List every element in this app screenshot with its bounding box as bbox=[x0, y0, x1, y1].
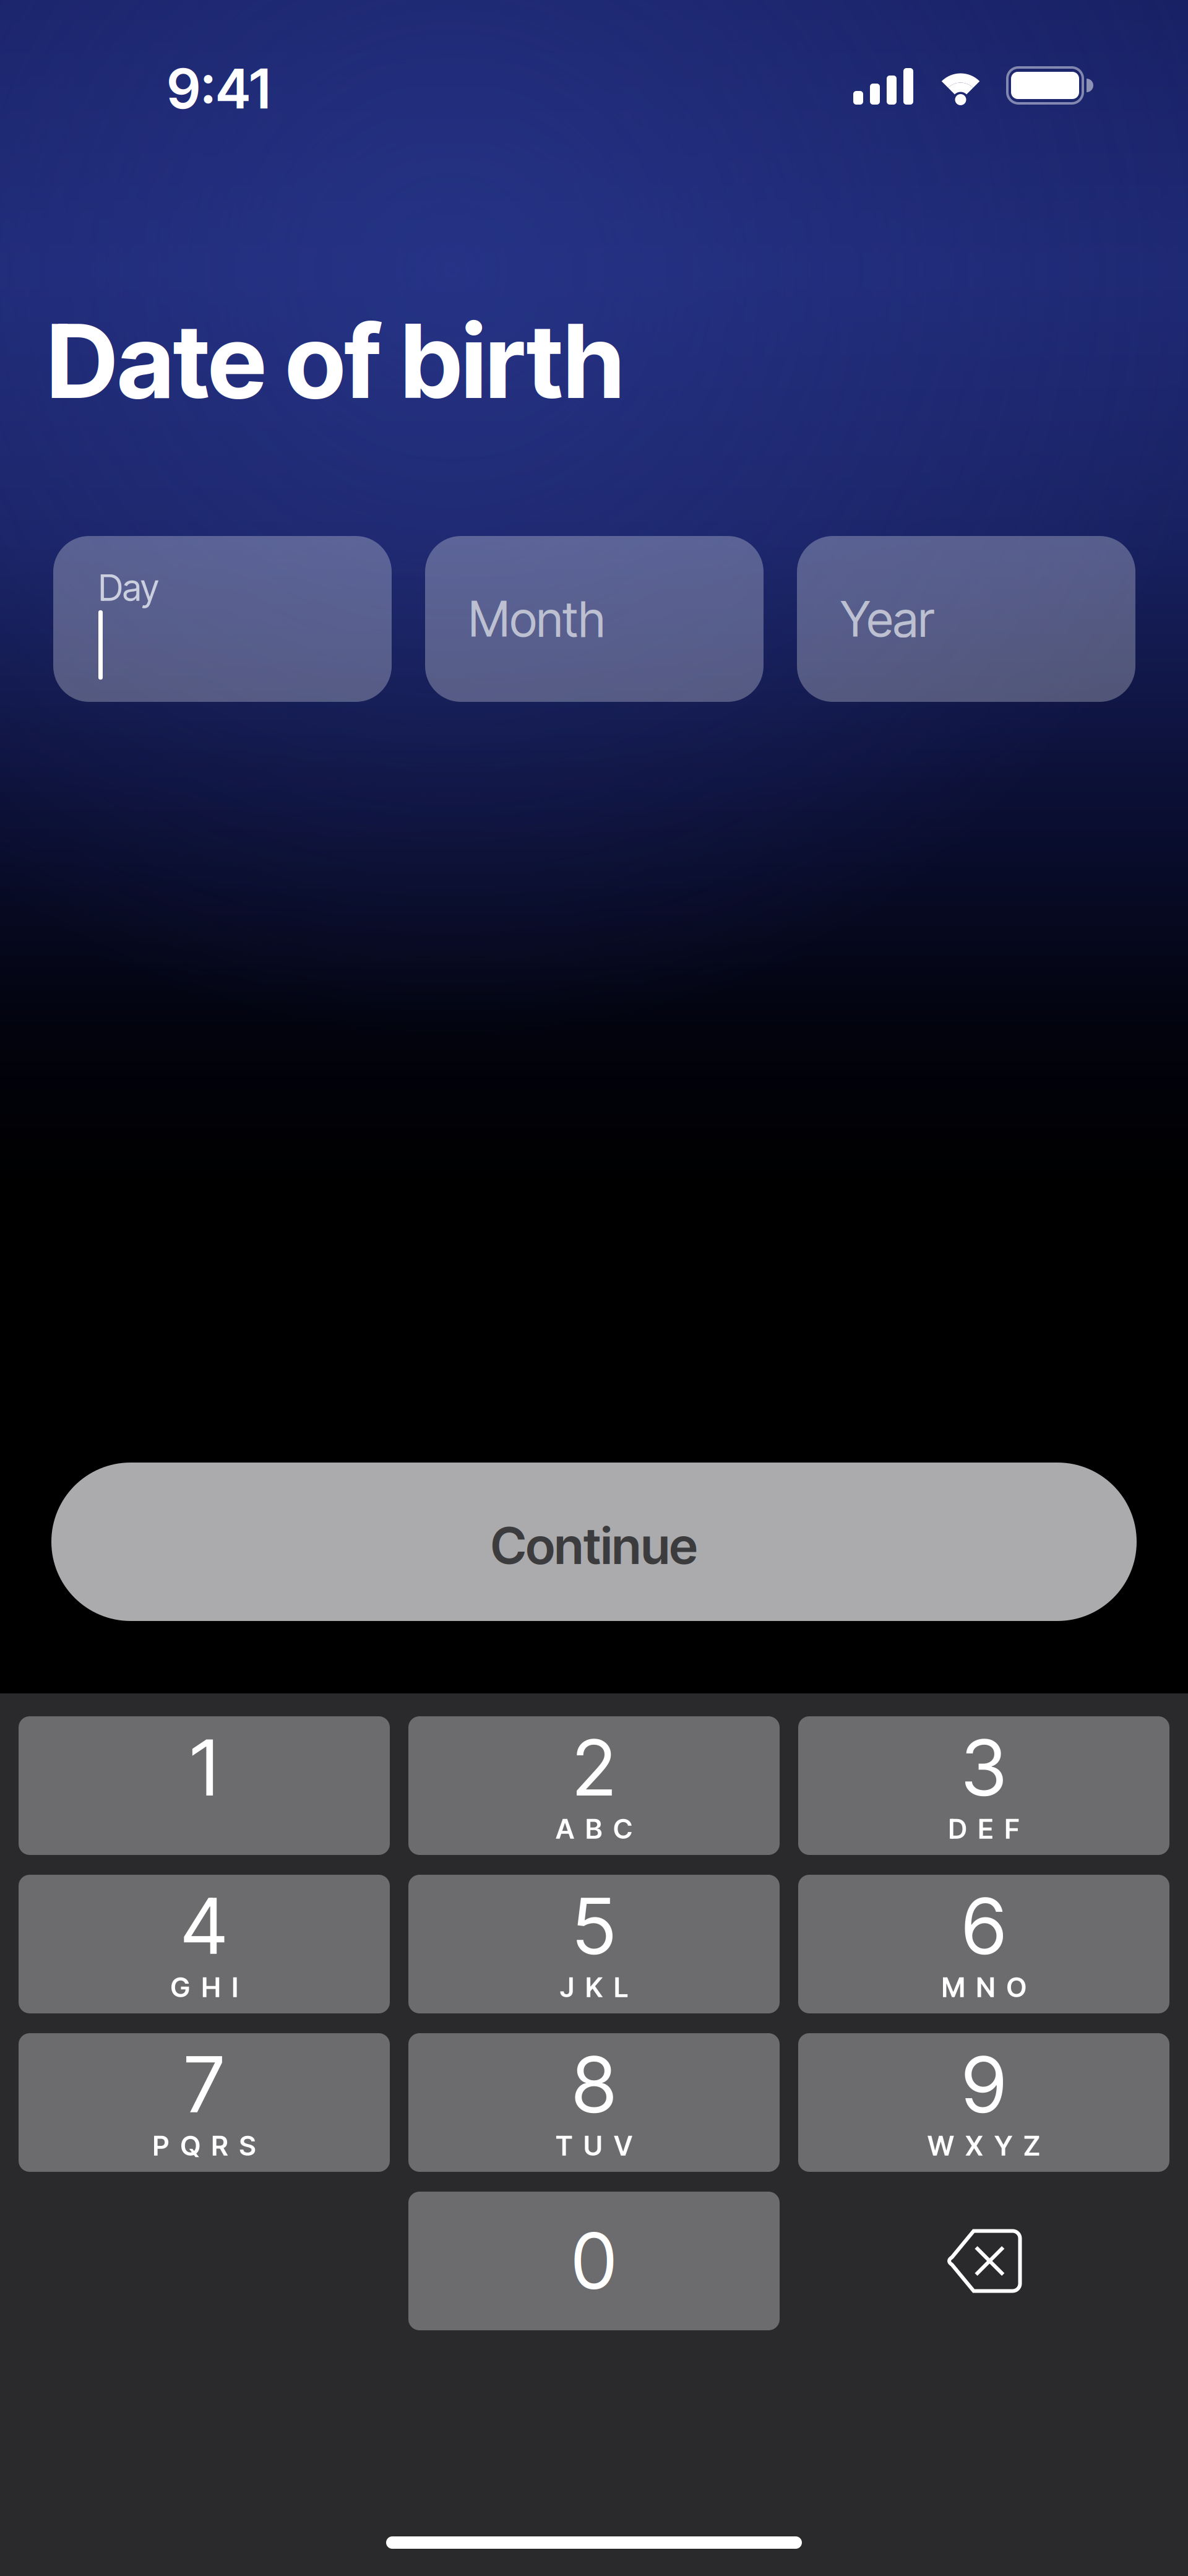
button[interactable]: 5 bbox=[408, 1875, 780, 2013]
staticText: PQRS bbox=[153, 2129, 256, 2162]
staticText: 0 bbox=[572, 2215, 616, 2307]
button[interactable]: 1 bbox=[19, 1716, 390, 1855]
button[interactable]: 7 bbox=[19, 2033, 390, 2172]
staticText: 9 bbox=[962, 2038, 1005, 2131]
staticText: Date of birth bbox=[47, 300, 624, 422]
button[interactable]: 4 bbox=[19, 1875, 390, 2013]
button[interactable]: Day bbox=[53, 536, 392, 702]
button[interactable]: Year bbox=[797, 536, 1135, 702]
button[interactable]: Month bbox=[425, 536, 764, 702]
staticText: JKL bbox=[560, 1971, 628, 2004]
button[interactable]: 2 bbox=[408, 1716, 780, 1855]
button[interactable]: 3 bbox=[798, 1716, 1169, 1855]
staticText: 5 bbox=[573, 1880, 615, 1973]
staticText: 6 bbox=[962, 1880, 1005, 1973]
staticText: GHI bbox=[170, 1971, 238, 2004]
staticText: 9:41 bbox=[167, 56, 270, 122]
staticText: WXYZ bbox=[928, 2129, 1040, 2162]
staticText: Day bbox=[98, 566, 159, 610]
staticText: 3 bbox=[961, 1721, 1006, 1814]
staticText: 1 bbox=[191, 1721, 218, 1814]
staticText: Year bbox=[840, 589, 934, 648]
staticText: Continue bbox=[491, 1515, 697, 1576]
button[interactable]: Continue bbox=[51, 1463, 1137, 1621]
button[interactable]: Delete bbox=[798, 2192, 1169, 2330]
staticText: ABC bbox=[556, 1812, 632, 1845]
staticText: 4 bbox=[181, 1880, 227, 1973]
staticText: 7 bbox=[184, 2038, 224, 2131]
button[interactable]: 6 bbox=[798, 1875, 1169, 2013]
staticText: 2 bbox=[573, 1721, 615, 1814]
staticText: Month bbox=[468, 589, 605, 648]
button[interactable]: 8 bbox=[408, 2033, 780, 2172]
staticText: TUV bbox=[556, 2129, 632, 2162]
staticText: 8 bbox=[572, 2038, 616, 2131]
button[interactable]: 0 bbox=[408, 2192, 780, 2330]
staticText: DEF bbox=[948, 1812, 1019, 1845]
button[interactable]: 9 bbox=[798, 2033, 1169, 2172]
staticText: MNO bbox=[941, 1971, 1026, 2004]
